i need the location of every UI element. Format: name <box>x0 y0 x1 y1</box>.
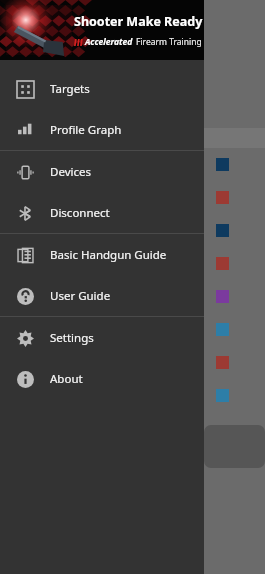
staticText: Basic Handgun Guide <box>50 247 167 263</box>
staticText: Firearm Training <box>136 36 202 48</box>
staticText: Shooter Make Ready <box>74 13 203 30</box>
staticText: Settings <box>50 330 94 346</box>
button[interactable] <box>0 379 265 412</box>
staticText: Targets <box>50 81 90 97</box>
button[interactable] <box>0 181 265 214</box>
staticText: Accelerated <box>85 36 133 48</box>
button[interactable] <box>0 346 265 379</box>
button[interactable]: Basic Handgun Guide <box>0 234 204 275</box>
staticText: Disconnect <box>50 205 110 221</box>
button[interactable]: Targets <box>0 68 204 109</box>
button[interactable] <box>0 148 265 181</box>
button[interactable]: Devices <box>0 151 204 192</box>
button[interactable] <box>0 313 265 346</box>
button[interactable]: User Guide <box>0 275 204 316</box>
staticText: About <box>50 371 83 387</box>
button[interactable] <box>0 247 265 280</box>
button[interactable]: Settings <box>0 317 204 358</box>
button[interactable] <box>0 214 265 247</box>
button[interactable]: Profile Graph <box>0 109 204 150</box>
button[interactable] <box>0 280 265 313</box>
staticText: User Guide <box>50 288 111 304</box>
button[interactable]: Disconnect <box>0 192 204 233</box>
button[interactable]: About <box>0 358 204 399</box>
staticText: Target <box>120 130 160 147</box>
staticText: Devices <box>50 164 91 180</box>
staticText: Profile Graph <box>50 122 122 138</box>
